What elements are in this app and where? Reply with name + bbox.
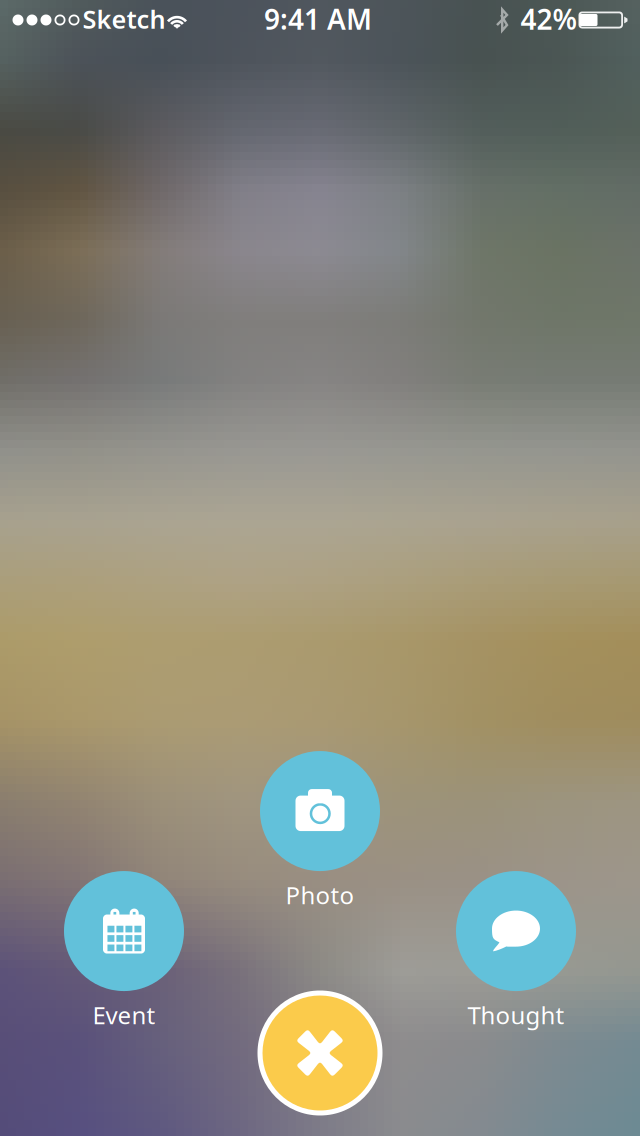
staticText: Event [92,999,155,1031]
staticText: Photo [285,879,354,911]
button[interactable]: Thought [431,871,601,1031]
button[interactable]: Close [257,990,382,1115]
staticText: Sketch [82,2,165,36]
button[interactable]: Photo [235,751,405,911]
staticText: 9:41 AM [264,0,372,38]
button[interactable]: Event [39,871,209,1031]
staticText: 42% [520,0,577,38]
staticText: Thought [467,999,564,1031]
